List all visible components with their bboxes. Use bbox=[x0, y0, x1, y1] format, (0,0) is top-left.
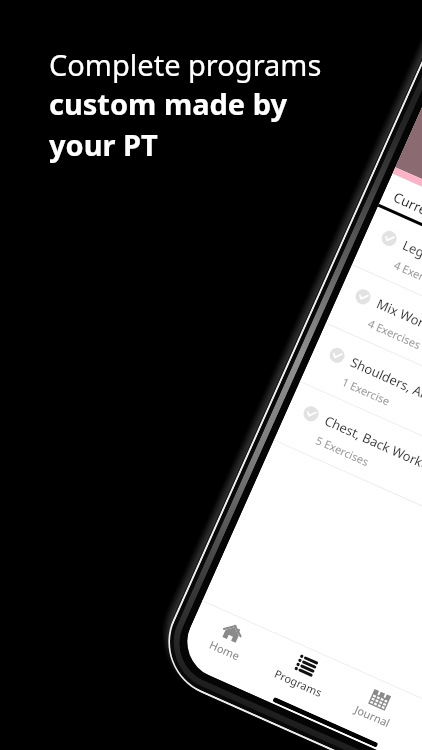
staticText: 1 Exercise bbox=[340, 374, 392, 408]
button[interactable]: Home bbox=[183, 603, 275, 677]
button[interactable]: Chest, Back Workout bbox=[273, 382, 422, 572]
staticText: Complete programs bbox=[49, 45, 322, 84]
staticText: Journal bbox=[352, 701, 392, 730]
staticText: Current bbox=[391, 188, 422, 224]
staticText: 4 Exercises bbox=[392, 257, 422, 294]
staticText: Mix Workout bbox=[374, 294, 422, 343]
staticText: custom made by your PT bbox=[49, 84, 288, 165]
button[interactable]: Legs Workout bbox=[352, 206, 422, 397]
staticText: Home bbox=[207, 637, 243, 663]
staticText: Shoulders, Arms Workout bbox=[348, 353, 422, 433]
staticText: Programs bbox=[272, 666, 325, 700]
staticText: Chest, Back Workout bbox=[322, 411, 422, 479]
button[interactable]: Current bbox=[378, 174, 422, 235]
staticText: 5 Exercises bbox=[314, 432, 372, 469]
button[interactable]: Journal bbox=[331, 669, 422, 743]
button[interactable]: Mix Workout bbox=[326, 265, 422, 455]
button[interactable]: Shoulders, Arms Workout bbox=[300, 323, 422, 514]
staticText: 4 Exercises bbox=[366, 315, 422, 352]
staticText: Legs Workout bbox=[400, 236, 422, 287]
button[interactable]: Programs bbox=[257, 636, 349, 710]
